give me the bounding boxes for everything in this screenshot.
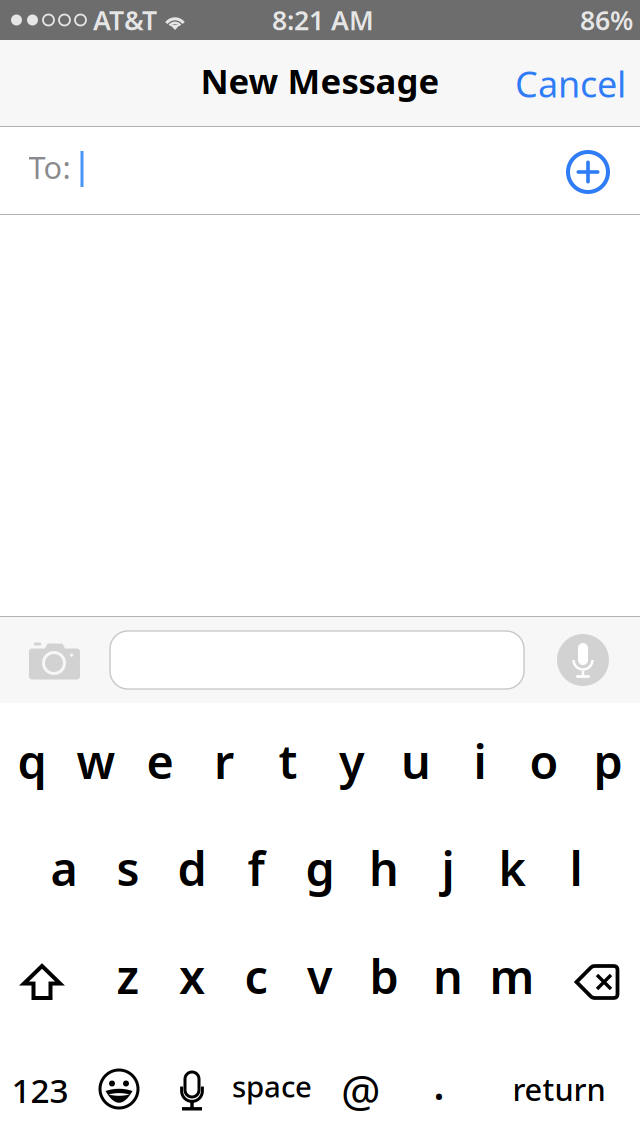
staticText: b: [369, 945, 398, 1007]
staticText: r: [214, 730, 234, 792]
staticText: t: [278, 730, 297, 792]
button[interactable]: x: [161, 930, 223, 1022]
staticText: y: [339, 730, 365, 792]
staticText: s: [116, 837, 139, 899]
button[interactable]: p: [577, 715, 639, 807]
button[interactable]: i: [449, 715, 511, 807]
button[interactable]: o: [513, 715, 575, 807]
button[interactable]: j: [417, 822, 479, 914]
staticText: i: [473, 730, 486, 792]
staticText: n: [433, 945, 463, 1007]
staticText: .: [433, 1054, 445, 1112]
staticText: g: [305, 837, 334, 899]
button[interactable]: e: [129, 715, 191, 807]
button[interactable]: y: [321, 715, 383, 807]
button[interactable]: return: [484, 1047, 634, 1131]
staticText: 86%: [580, 2, 633, 38]
staticText: z: [116, 945, 139, 1007]
button[interactable]: n: [417, 930, 479, 1022]
button[interactable]: m: [481, 930, 543, 1022]
button[interactable]: f: [225, 822, 287, 914]
staticText: New Message: [200, 57, 439, 103]
staticText: v: [307, 945, 333, 1007]
button[interactable]: Cancel: [515, 40, 640, 126]
staticText: q: [17, 730, 46, 792]
button[interactable]: v: [289, 930, 351, 1022]
staticText: o: [529, 730, 558, 792]
staticText: @: [341, 1061, 381, 1119]
staticText: space: [232, 1066, 312, 1105]
staticText: e: [146, 730, 173, 792]
staticText: 123: [11, 1068, 68, 1112]
button[interactable]: s: [97, 822, 159, 914]
button[interactable]: Camera: [17, 626, 93, 696]
button[interactable]: .: [407, 1041, 471, 1125]
button[interactable]: a: [33, 822, 95, 914]
staticText: l: [569, 837, 582, 899]
staticText: c: [244, 945, 267, 1007]
button[interactable]: @: [329, 1048, 393, 1132]
button[interactable]: q: [1, 715, 63, 807]
button[interactable]: h: [353, 822, 415, 914]
staticText: d: [177, 837, 206, 899]
button[interactable]: z: [97, 930, 159, 1022]
staticText: h: [369, 837, 399, 899]
button[interactable]: t: [257, 715, 319, 807]
button[interactable]: r: [193, 715, 255, 807]
button[interactable]: Add contact: [555, 139, 621, 205]
button[interactable]: Delete: [554, 936, 640, 1028]
staticText: return: [512, 1069, 605, 1109]
button[interactable]: b: [353, 930, 415, 1022]
staticText: 8:21 AM: [272, 2, 374, 38]
button[interactable]: l: [545, 822, 607, 914]
staticText: Cancel: [515, 60, 626, 107]
button[interactable]: Emoji keyboard: [87, 1047, 151, 1131]
staticText: x: [179, 945, 205, 1007]
button[interactable]: d: [161, 822, 223, 914]
staticText: u: [401, 730, 431, 792]
staticText: f: [247, 837, 264, 899]
button[interactable]: 123: [0, 1048, 84, 1132]
staticText: a: [50, 837, 77, 899]
button[interactable]: g: [289, 822, 351, 914]
staticText: m: [489, 945, 534, 1007]
button[interactable]: u: [385, 715, 447, 807]
button[interactable]: k: [481, 822, 543, 914]
staticText: To:: [28, 147, 70, 187]
button[interactable]: space: [197, 1044, 347, 1128]
button[interactable]: c: [225, 930, 287, 1022]
button[interactable]: w: [65, 715, 127, 807]
button[interactable]: Dictate: [548, 625, 618, 695]
button[interactable]: Shift: [0, 936, 85, 1028]
staticText: AT&T: [93, 2, 157, 38]
staticText: j: [441, 837, 454, 899]
staticText: k: [498, 837, 525, 899]
staticText: w: [76, 730, 115, 792]
staticText: p: [593, 730, 622, 792]
button[interactable]: Dictation: [160, 1049, 224, 1133]
